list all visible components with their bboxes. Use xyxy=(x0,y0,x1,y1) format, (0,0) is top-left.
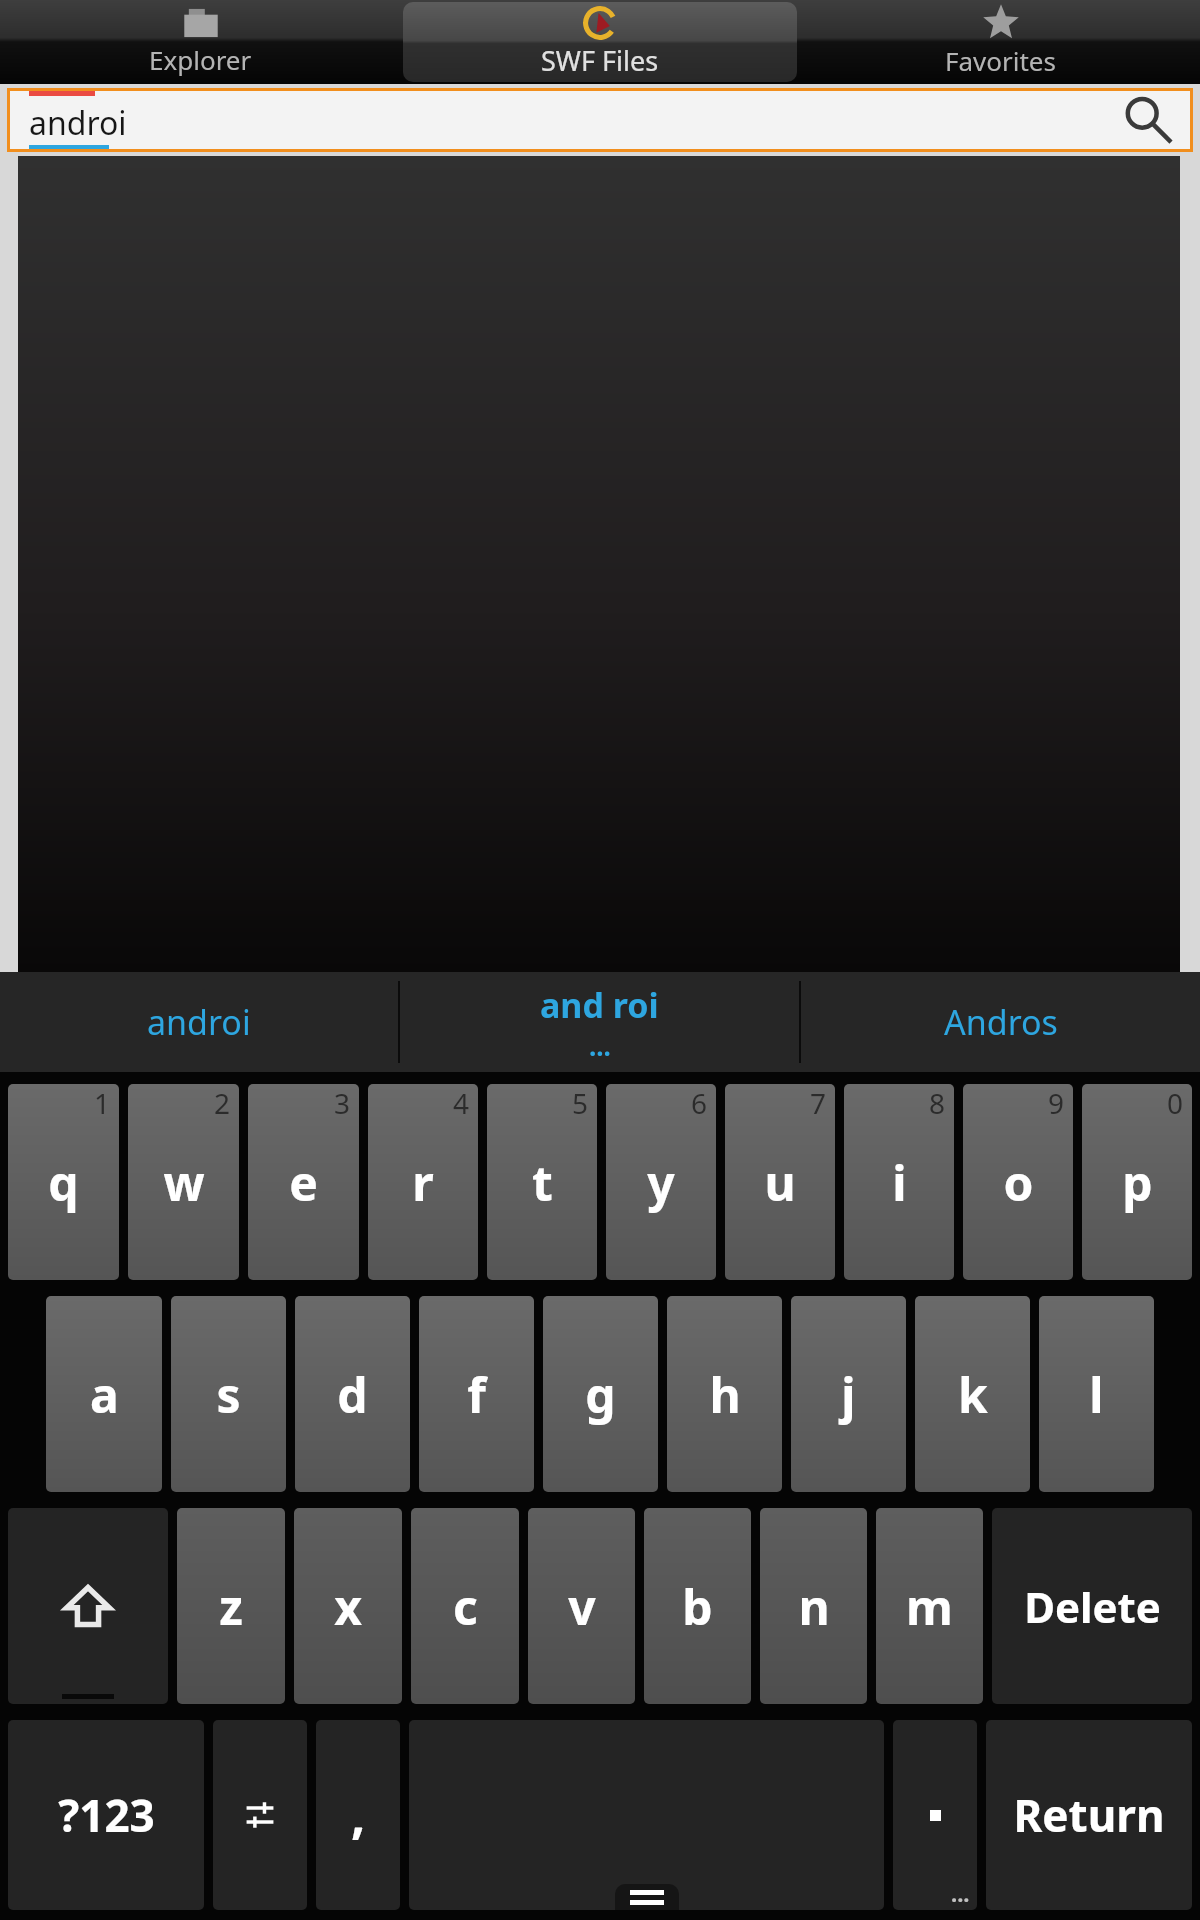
staticText: Delete xyxy=(1024,1578,1161,1635)
button[interactable]: k xyxy=(915,1296,1030,1492)
staticText: , xyxy=(351,1781,366,1849)
button[interactable]: Andros xyxy=(801,972,1200,1072)
staticText: 3 xyxy=(334,1084,351,1122)
button[interactable]: 7 xyxy=(725,1084,835,1280)
button[interactable]: 8 xyxy=(844,1084,954,1280)
staticText: Favorites xyxy=(945,43,1056,78)
button[interactable]: 0 xyxy=(1082,1084,1192,1280)
staticText: r xyxy=(412,1150,434,1215)
staticText: y xyxy=(647,1150,675,1215)
staticText: a xyxy=(90,1362,119,1427)
button[interactable]: Comma xyxy=(316,1720,400,1910)
button[interactable]: h xyxy=(667,1296,782,1492)
button[interactable]: m xyxy=(876,1508,983,1704)
button[interactable]: Favorites xyxy=(800,0,1200,84)
staticText: ... xyxy=(589,1028,611,1063)
staticText: 4 xyxy=(453,1084,470,1122)
button[interactable]: 2 xyxy=(128,1084,239,1280)
button[interactable]: Period xyxy=(893,1720,977,1910)
staticText: p xyxy=(1122,1150,1153,1215)
button[interactable]: s xyxy=(171,1296,286,1492)
button[interactable]: Return xyxy=(986,1720,1192,1910)
button[interactable]: 4 xyxy=(368,1084,478,1280)
button[interactable]: Input settings xyxy=(213,1720,307,1910)
staticText: o xyxy=(1003,1150,1034,1215)
staticText: e xyxy=(289,1150,318,1215)
button[interactable]: 6 xyxy=(606,1084,716,1280)
button[interactable]: g xyxy=(543,1296,658,1492)
staticText: h xyxy=(709,1362,741,1427)
staticText: 7 xyxy=(810,1084,827,1122)
button[interactable]: Delete xyxy=(992,1508,1192,1704)
staticText: m xyxy=(906,1574,953,1639)
staticText: ... xyxy=(951,1878,970,1908)
button[interactable]: x xyxy=(294,1508,402,1704)
staticText: 8 xyxy=(929,1084,946,1122)
staticText: w xyxy=(163,1150,205,1215)
staticText: 1 xyxy=(94,1084,111,1122)
staticText: d xyxy=(337,1362,368,1427)
staticText: 6 xyxy=(691,1084,708,1122)
staticText: f xyxy=(467,1362,486,1427)
button[interactable]: 3 xyxy=(248,1084,359,1280)
staticText: b xyxy=(682,1574,713,1639)
staticText: Explorer xyxy=(149,42,252,77)
staticText: SWF Files xyxy=(541,42,659,79)
staticText: and roi xyxy=(540,982,659,1028)
staticText: j xyxy=(841,1362,856,1427)
staticText: Return xyxy=(1013,1785,1165,1845)
button[interactable]: ?123 xyxy=(8,1720,204,1910)
button[interactable]: Shift xyxy=(8,1508,168,1704)
button[interactable]: 5 xyxy=(487,1084,597,1280)
staticText: androi xyxy=(29,101,127,145)
button[interactable]: 9 xyxy=(963,1084,1073,1280)
button[interactable]: z xyxy=(177,1508,285,1704)
button[interactable]: b xyxy=(644,1508,751,1704)
button[interactable]: androi xyxy=(7,88,1193,152)
button[interactable]: d xyxy=(295,1296,410,1492)
staticText: 2 xyxy=(214,1084,231,1122)
button[interactable]: androi xyxy=(0,972,398,1072)
button[interactable]: Space xyxy=(409,1720,884,1910)
button[interactable]: j xyxy=(791,1296,906,1492)
button[interactable]: a xyxy=(46,1296,162,1492)
staticText: 0 xyxy=(1167,1084,1184,1122)
staticText: g xyxy=(585,1362,616,1427)
staticText: l xyxy=(1089,1362,1104,1427)
staticText: androi xyxy=(147,999,251,1045)
button[interactable]: v xyxy=(528,1508,635,1704)
staticText: ?123 xyxy=(58,1785,155,1845)
staticText: Andros xyxy=(944,999,1058,1045)
button[interactable]: and roi xyxy=(400,972,799,1072)
staticText: s xyxy=(216,1362,241,1427)
button[interactable]: c xyxy=(411,1508,519,1704)
button[interactable]: l xyxy=(1039,1296,1154,1492)
staticText: c xyxy=(453,1574,478,1639)
staticText: n xyxy=(798,1574,830,1639)
staticText: k xyxy=(958,1362,988,1427)
staticText: u xyxy=(764,1150,796,1215)
button[interactable]: Explorer xyxy=(0,0,400,84)
button[interactable]: n xyxy=(760,1508,867,1704)
staticText: 5 xyxy=(572,1084,589,1122)
button[interactable]: f xyxy=(419,1296,534,1492)
button[interactable]: 1 xyxy=(8,1084,119,1280)
staticText: z xyxy=(219,1574,243,1639)
button[interactable]: SWF Files xyxy=(403,2,797,82)
staticText: 9 xyxy=(1048,1084,1065,1122)
staticText: t xyxy=(532,1150,553,1215)
staticText: i xyxy=(892,1150,907,1215)
staticText: q xyxy=(48,1150,79,1215)
staticText: x xyxy=(334,1574,362,1639)
staticText: v xyxy=(568,1574,596,1639)
